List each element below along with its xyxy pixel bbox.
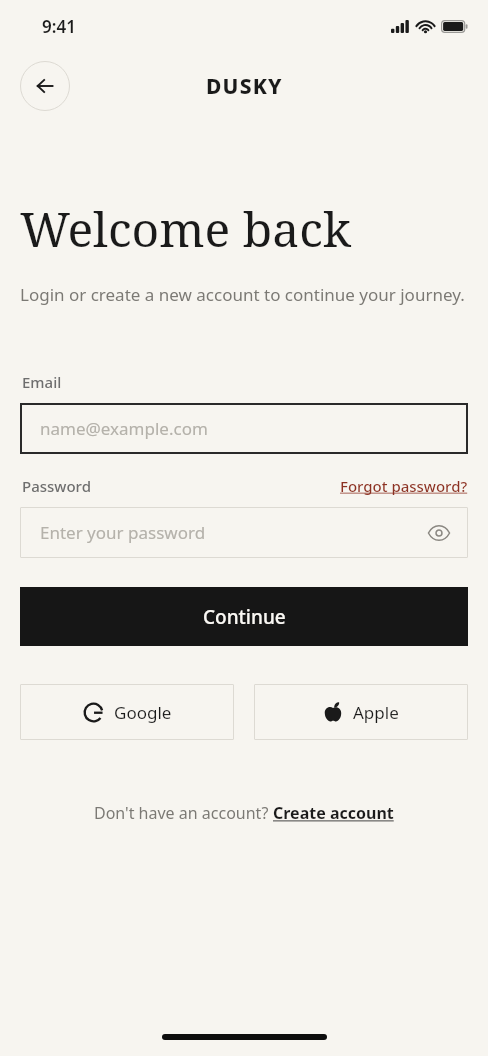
button[interactable]: name@example.com: [20, 403, 468, 454]
staticText: Continue: [203, 604, 286, 630]
staticText: Create account: [273, 802, 394, 824]
staticText: Don't have an account?: [94, 802, 273, 824]
staticText: Forgot password?: [340, 476, 468, 496]
button[interactable]: Continue: [20, 587, 468, 646]
button[interactable]: Show password: [422, 516, 456, 550]
staticText: Enter your password: [40, 521, 206, 544]
staticText: Login or create a new account to continu…: [20, 283, 465, 306]
staticText: Welcome back: [20, 196, 351, 261]
staticText: 9:41: [42, 15, 76, 38]
button[interactable]: Google: [20, 684, 234, 740]
button[interactable]: Create account: [273, 802, 394, 824]
button[interactable]: Back: [20, 61, 70, 111]
staticText: Apple: [353, 701, 399, 724]
button[interactable]: Forgot password?: [340, 476, 468, 496]
staticText: Google: [114, 701, 172, 724]
staticText: DUSKY: [206, 72, 283, 101]
staticText: Password: [22, 476, 91, 496]
button[interactable]: Apple: [254, 684, 468, 740]
staticText: name@example.com: [40, 417, 208, 440]
staticText: Email: [22, 372, 62, 392]
button[interactable]: Enter your password: [20, 507, 468, 558]
